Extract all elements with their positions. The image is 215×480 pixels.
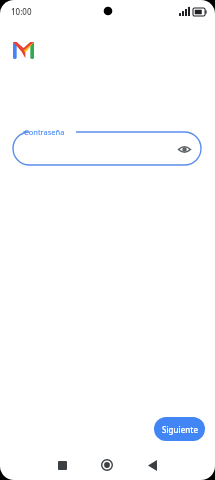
button[interactable]: Inicio (92, 450, 122, 480)
staticText: 10:00 (11, 6, 32, 17)
button[interactable]: Atrás (137, 450, 167, 480)
button[interactable]: Siguiente (154, 417, 205, 441)
button[interactable]: Mostrar contraseña (175, 140, 193, 158)
button[interactable]: Contraseña (13, 132, 201, 165)
staticText: Siguiente (162, 424, 198, 435)
staticText: Contraseña (24, 127, 65, 137)
button[interactable]: Recientes (47, 450, 77, 480)
